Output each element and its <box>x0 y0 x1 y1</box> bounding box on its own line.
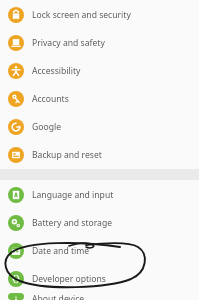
staticText: Lock screen and security <box>32 9 131 21</box>
staticText: Developer options <box>32 273 106 285</box>
button[interactable]: Accessibility <box>0 57 199 85</box>
button[interactable]: Accounts <box>0 85 199 113</box>
staticText: Battery and storage <box>32 217 113 229</box>
staticText: Accessibility <box>32 65 81 77</box>
staticText: Language and input <box>32 189 114 201</box>
staticText: Privacy and safety <box>32 37 105 49</box>
staticText: Date and time <box>32 245 90 257</box>
button[interactable]: Lock screen and security <box>0 1 199 29</box>
button[interactable]: Language and input <box>0 181 199 209</box>
button[interactable]: Battery and storage <box>0 209 199 237</box>
button[interactable]: Developer options <box>0 265 199 293</box>
staticText: Accounts <box>32 93 69 105</box>
button[interactable]: Privacy and safety <box>0 29 199 57</box>
button[interactable]: Backup and reset <box>0 141 199 169</box>
staticText: Google <box>32 121 62 133</box>
staticText: Backup and reset <box>32 149 102 161</box>
button[interactable]: About device <box>0 293 199 300</box>
staticText: About device <box>32 293 85 300</box>
button[interactable]: Google <box>0 113 199 141</box>
button[interactable]: Date and time <box>0 237 199 265</box>
